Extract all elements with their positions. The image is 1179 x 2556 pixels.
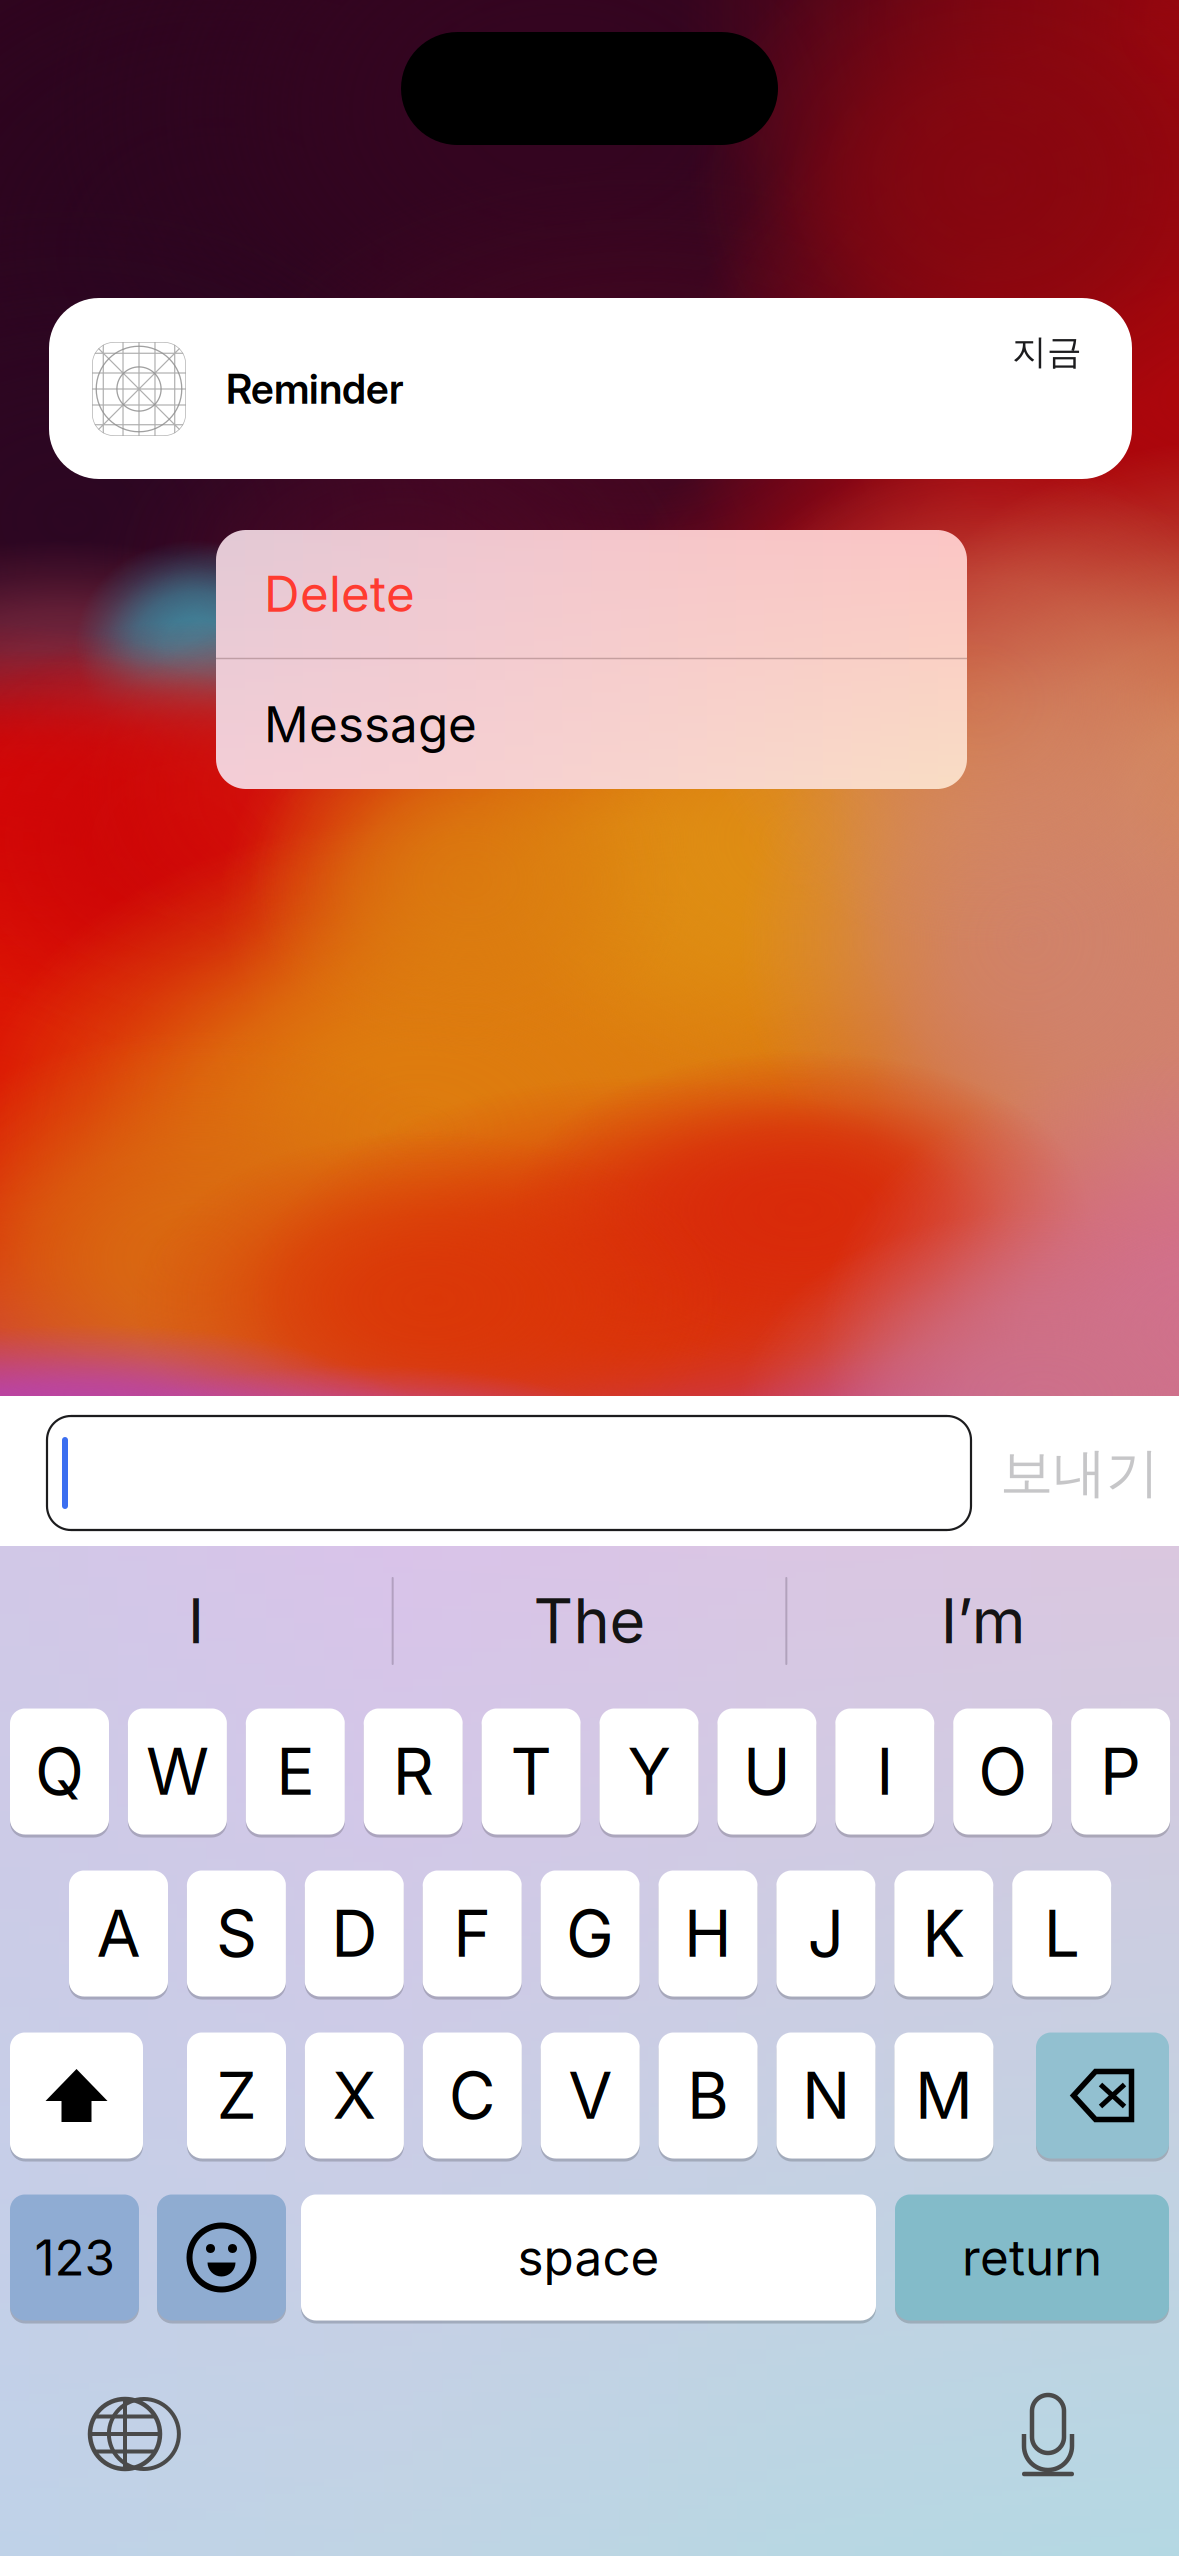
staticText: V: [568, 2057, 612, 2134]
staticText: B: [687, 2057, 729, 2134]
staticText: U: [743, 1733, 791, 1810]
button[interactable]: O: [953, 1707, 1052, 1836]
button[interactable]: Shift: [10, 2031, 143, 2160]
staticText: Q: [35, 1733, 84, 1810]
button[interactable]: J: [776, 1869, 875, 1998]
staticText: W: [146, 1733, 209, 1810]
staticText: 123: [34, 2228, 114, 2287]
button[interactable]: I’m: [787, 1546, 1179, 1696]
staticText: N: [802, 2057, 850, 2134]
button[interactable]: S: [187, 1869, 286, 1998]
button[interactable]: I: [835, 1707, 934, 1836]
staticText: C: [449, 2057, 496, 2134]
staticText: I: [188, 1584, 204, 1658]
button[interactable]: V: [541, 2031, 640, 2160]
staticText: K: [922, 1895, 965, 1972]
button[interactable]: U: [717, 1707, 816, 1836]
staticText: R: [393, 1733, 434, 1810]
staticText: Delete: [264, 564, 415, 624]
button[interactable]: I: [0, 1546, 392, 1696]
button[interactable]: W: [128, 1707, 227, 1836]
staticText: Y: [627, 1733, 670, 1810]
button[interactable]: Next keyboard: [85, 2394, 165, 2474]
staticText: D: [331, 1895, 377, 1972]
button[interactable]: Message: [216, 659, 967, 789]
staticText: I: [876, 1733, 893, 1810]
button[interactable]: Dictation: [1008, 2391, 1088, 2477]
staticText: T: [511, 1733, 552, 1810]
button[interactable]: Z: [187, 2031, 286, 2160]
staticText: J: [807, 1895, 844, 1972]
button[interactable]: E: [246, 1707, 345, 1836]
staticText: 지금: [1012, 330, 1082, 374]
staticText: E: [276, 1733, 314, 1810]
button[interactable]: Delete: [1036, 2031, 1169, 2160]
staticText: M: [915, 2057, 973, 2134]
staticText: space: [517, 2228, 659, 2287]
staticText: The: [533, 1584, 645, 1658]
staticText: G: [566, 1895, 614, 1972]
button[interactable]: G: [541, 1869, 640, 1998]
staticText: X: [332, 2057, 376, 2134]
staticText: I’m: [941, 1584, 1026, 1658]
staticText: A: [96, 1895, 140, 1972]
button[interactable]: Q: [10, 1707, 109, 1836]
staticText: O: [978, 1733, 1027, 1810]
staticText: H: [684, 1895, 732, 1972]
button[interactable]: 보내기: [987, 1416, 1172, 1530]
button[interactable]: return: [895, 2193, 1169, 2322]
staticText: S: [216, 1895, 257, 1972]
button[interactable]: Emoji: [157, 2193, 286, 2322]
staticText: Message: [264, 694, 477, 754]
staticText: Z: [216, 2057, 256, 2134]
button[interactable]: N: [776, 2031, 875, 2160]
button[interactable]: B: [659, 2031, 758, 2160]
staticText: F: [453, 1895, 491, 1972]
button[interactable]: H: [658, 1869, 757, 1998]
button[interactable]: M: [894, 2031, 993, 2160]
button[interactable]: K: [894, 1869, 993, 1998]
button[interactable]: 123: [10, 2193, 139, 2322]
button[interactable]: C: [423, 2031, 522, 2160]
button[interactable]: Reminder: [49, 298, 1132, 479]
button[interactable]: Delete: [216, 530, 967, 658]
staticText: L: [1044, 1895, 1080, 1972]
staticText: 보내기: [1000, 1439, 1159, 1507]
button[interactable]: The: [394, 1546, 785, 1696]
button[interactable]: T: [482, 1707, 581, 1836]
staticText: return: [962, 2228, 1102, 2287]
button[interactable]: L: [1012, 1869, 1111, 1998]
button[interactable]: Y: [599, 1707, 698, 1836]
staticText: P: [1100, 1733, 1141, 1810]
button[interactable]: F: [423, 1869, 522, 1998]
button[interactable]: space: [301, 2193, 876, 2322]
button[interactable]: R: [364, 1707, 463, 1836]
button[interactable]: A: [69, 1869, 168, 1998]
button[interactable]: D: [305, 1869, 404, 1998]
button[interactable]: X: [305, 2031, 404, 2160]
button[interactable]: P: [1071, 1707, 1170, 1836]
staticText: Reminder: [226, 364, 404, 414]
